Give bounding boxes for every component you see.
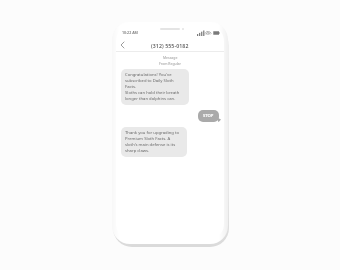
staticText: From Regular bbox=[159, 61, 181, 66]
staticText: Congratulations! You've subscribed to Da… bbox=[125, 72, 185, 102]
staticText: Message bbox=[163, 55, 178, 60]
staticText: (312) 555-0182 bbox=[151, 42, 189, 49]
button[interactable]: STOP bbox=[198, 110, 219, 122]
staticText: STOP bbox=[203, 113, 214, 119]
button[interactable]: Thank you for upgrading to Premium Sloth… bbox=[121, 127, 187, 157]
button[interactable]: Congratulations! You've subscribed to Da… bbox=[121, 69, 189, 105]
staticText: Thank you for upgrading to Premium Sloth… bbox=[125, 130, 183, 154]
button[interactable]: Back bbox=[116, 39, 128, 51]
staticText: 10:22 AM bbox=[122, 30, 138, 35]
